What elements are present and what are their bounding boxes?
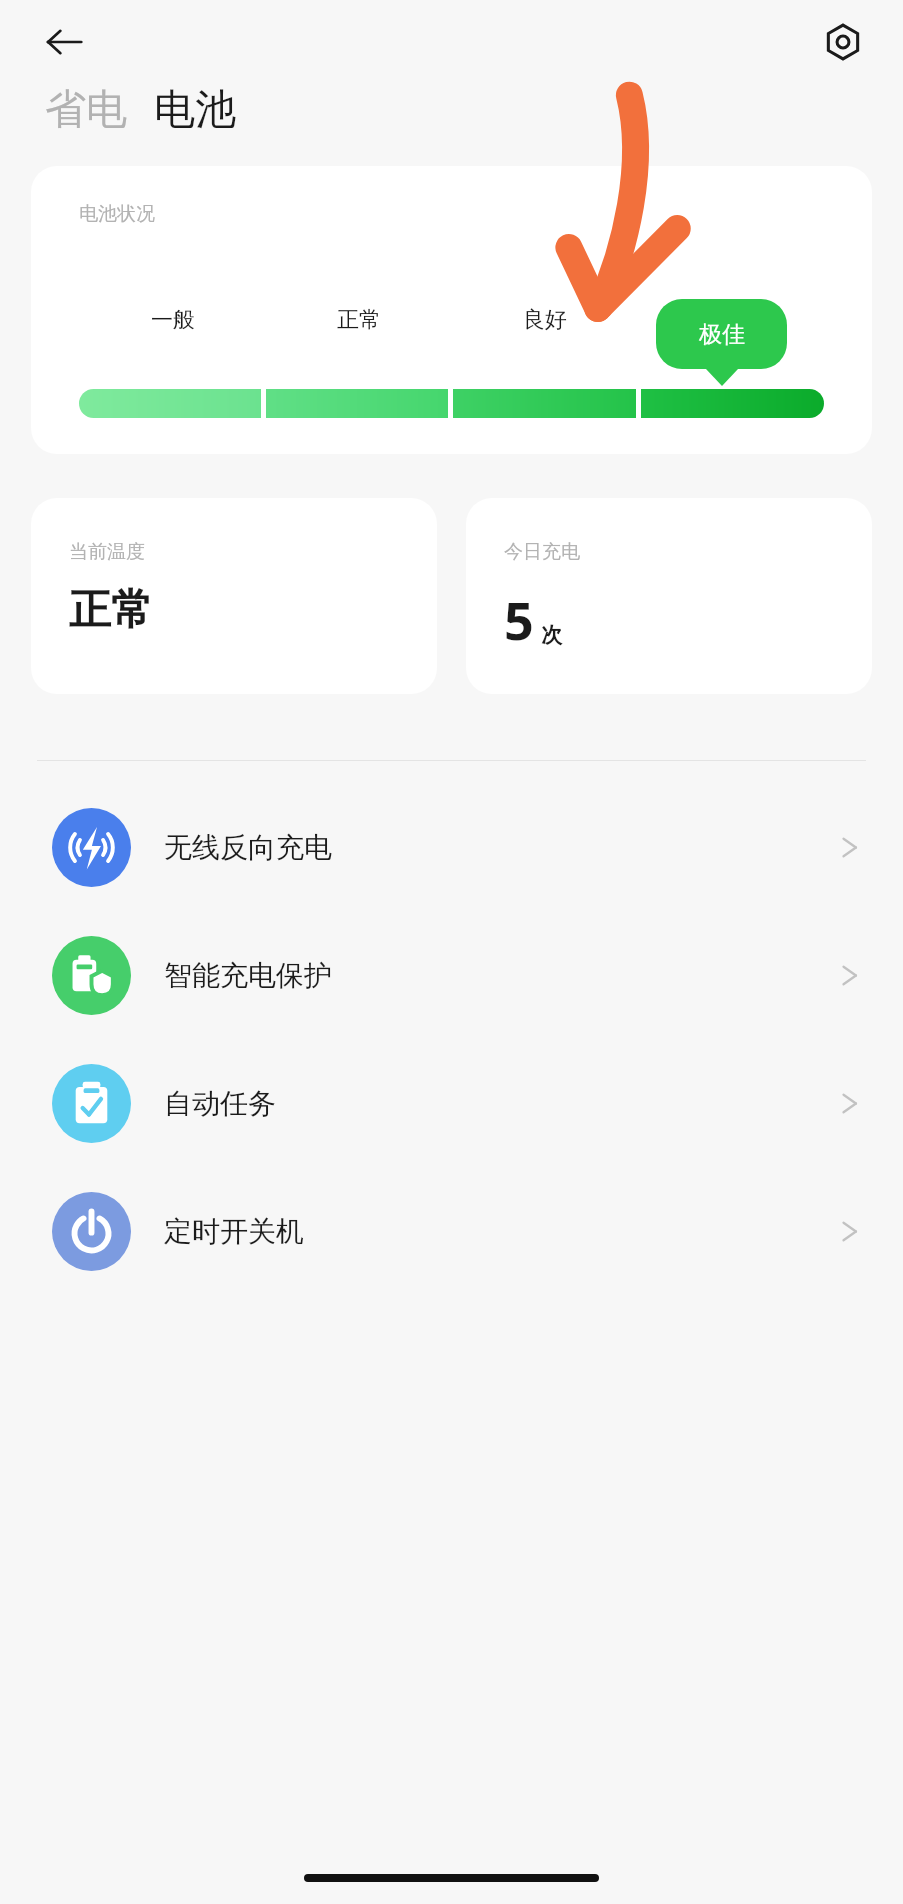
staticText: 一般 (151, 306, 195, 334)
button[interactable]: 今日充电 (466, 498, 872, 694)
button[interactable]: 自动任务 (0, 1039, 903, 1167)
staticText: 智能充电保护 (164, 958, 332, 993)
staticText: 极佳 (699, 320, 745, 349)
staticText: 良好 (523, 306, 567, 334)
staticText: 自动任务 (164, 1086, 276, 1121)
staticText: 正常 (69, 584, 153, 637)
staticText: 5 (504, 584, 534, 655)
staticText: 省电 (45, 84, 127, 136)
staticText: 无线反向充电 (164, 830, 332, 865)
button[interactable]: 定时开关机 (0, 1167, 903, 1295)
staticText: 正常 (337, 306, 381, 334)
staticText: 定时开关机 (164, 1214, 304, 1249)
staticText: 今日充电 (504, 540, 580, 564)
staticText: 电池状况 (79, 202, 155, 226)
button[interactable]: Back (36, 14, 92, 70)
button[interactable]: 当前温度 (31, 498, 437, 694)
button[interactable]: 电池状况 (31, 166, 872, 454)
button[interactable]: Settings (815, 14, 871, 70)
button[interactable]: 智能充电保护 (0, 911, 903, 1039)
button[interactable]: 无线反向充电 (0, 783, 903, 911)
staticText: 当前温度 (69, 540, 145, 564)
staticText: 次 (541, 622, 562, 648)
button[interactable]: 极佳 (656, 299, 787, 369)
staticText: 电池 (154, 84, 236, 136)
